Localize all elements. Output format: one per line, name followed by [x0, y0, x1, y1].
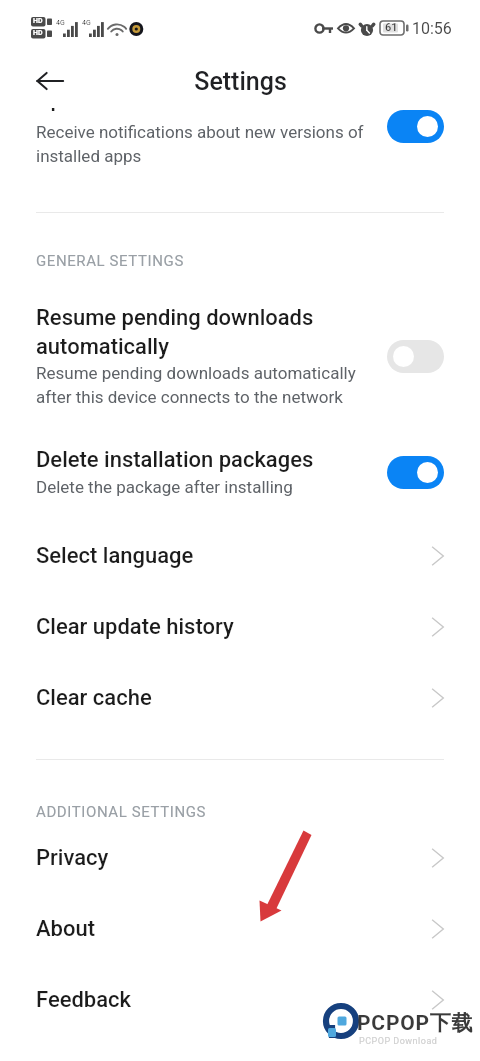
button[interactable]: Switch on	[387, 456, 444, 489]
staticText: Settings	[194, 67, 287, 96]
button[interactable]: Back	[27, 58, 73, 104]
button[interactable]: Clear update history	[0, 591, 480, 662]
staticText: 4G	[82, 19, 91, 27]
staticText: ADDITIONAL SETTINGS	[36, 803, 207, 821]
staticText: Select language	[36, 543, 431, 569]
staticText: HD	[33, 17, 43, 25]
staticText: Clear cache	[36, 685, 431, 711]
button[interactable]: Resume pending downloads automatically	[0, 305, 480, 407]
staticText: Delete installation packages	[36, 447, 314, 473]
staticText: 61	[385, 21, 398, 34]
button[interactable]: Switch on	[387, 110, 444, 143]
staticText: HD	[33, 29, 43, 37]
button[interactable]: About	[0, 893, 480, 964]
button[interactable]: Clear cache	[0, 662, 480, 733]
staticText: About	[36, 916, 431, 942]
staticText: 10:56	[412, 19, 452, 38]
staticText: Privacy	[36, 845, 431, 871]
staticText: 4G	[56, 19, 65, 27]
button[interactable]: Switch off	[387, 340, 444, 373]
button[interactable]: Select language	[0, 520, 480, 591]
staticText: Feedback	[36, 987, 431, 1013]
button[interactable]: Delete installation packages	[0, 447, 480, 497]
button[interactable]: Update notifications	[0, 108, 480, 166]
staticText: PCPOP下载	[357, 1010, 474, 1036]
button[interactable]: Privacy	[0, 822, 480, 893]
staticText: Resume pending downloads automatically a…	[36, 363, 356, 407]
button[interactable]: Feedback	[0, 964, 480, 1035]
staticText: Delete the package after installing	[36, 477, 293, 497]
staticText: Update notifications	[36, 108, 235, 112]
staticText: GENERAL SETTINGS	[36, 252, 184, 270]
staticText: PCPOP Download	[359, 1036, 438, 1047]
staticText: Resume pending downloads automatically	[36, 305, 314, 359]
staticText: Receive notifications about new versions…	[36, 122, 364, 166]
staticText: Clear update history	[36, 614, 431, 640]
